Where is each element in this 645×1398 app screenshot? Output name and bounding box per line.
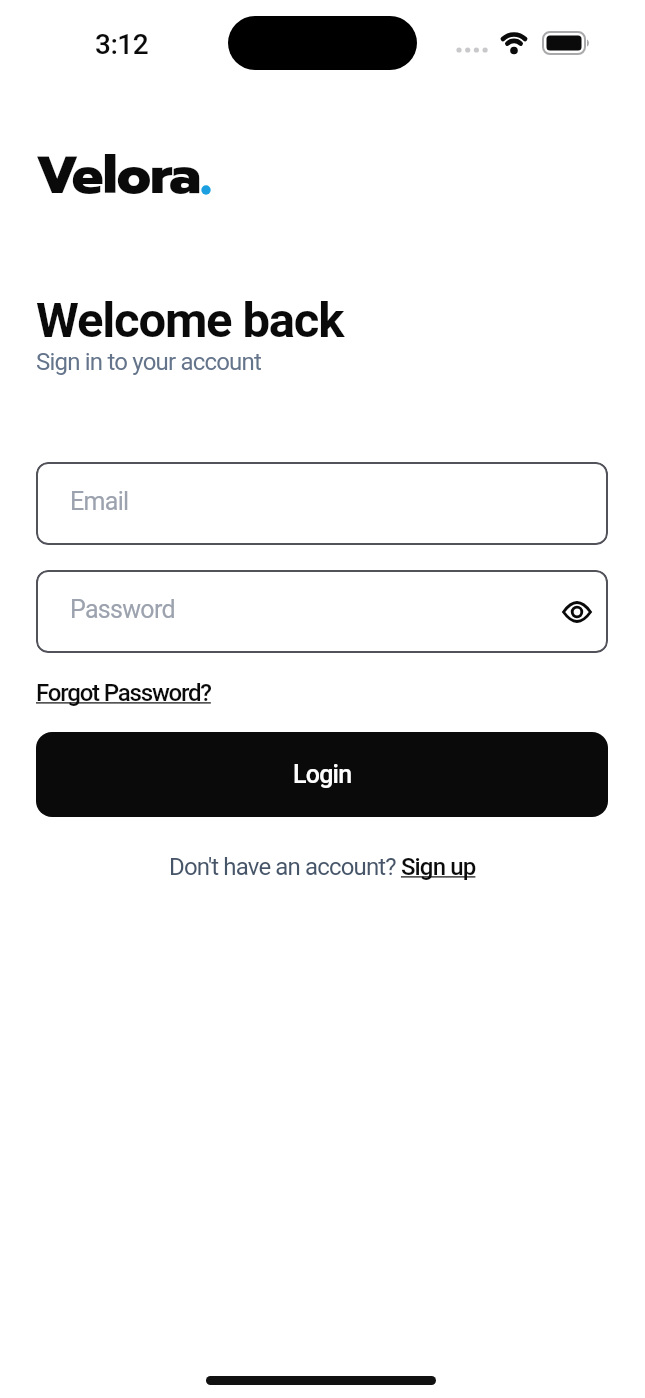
staticText: Email	[70, 487, 129, 516]
staticText: Sign in to your account	[36, 348, 262, 376]
staticText: Login	[293, 760, 352, 789]
button[interactable]: Login	[36, 732, 608, 817]
staticText: Don't have an account? Sign up	[169, 853, 476, 881]
button[interactable]: Password	[36, 570, 608, 653]
staticText: Welcome back	[36, 292, 344, 349]
staticText: Forgot Password?	[36, 679, 211, 707]
staticText: Velora	[36, 135, 201, 215]
button[interactable]: Don't have an account? Sign up	[0, 853, 645, 881]
staticText: 3:12	[95, 28, 149, 61]
button[interactable]: Email	[36, 462, 608, 545]
button[interactable]	[562, 598, 592, 626]
button[interactable]: Forgot Password?	[36, 679, 211, 707]
staticText: Password	[70, 595, 175, 624]
